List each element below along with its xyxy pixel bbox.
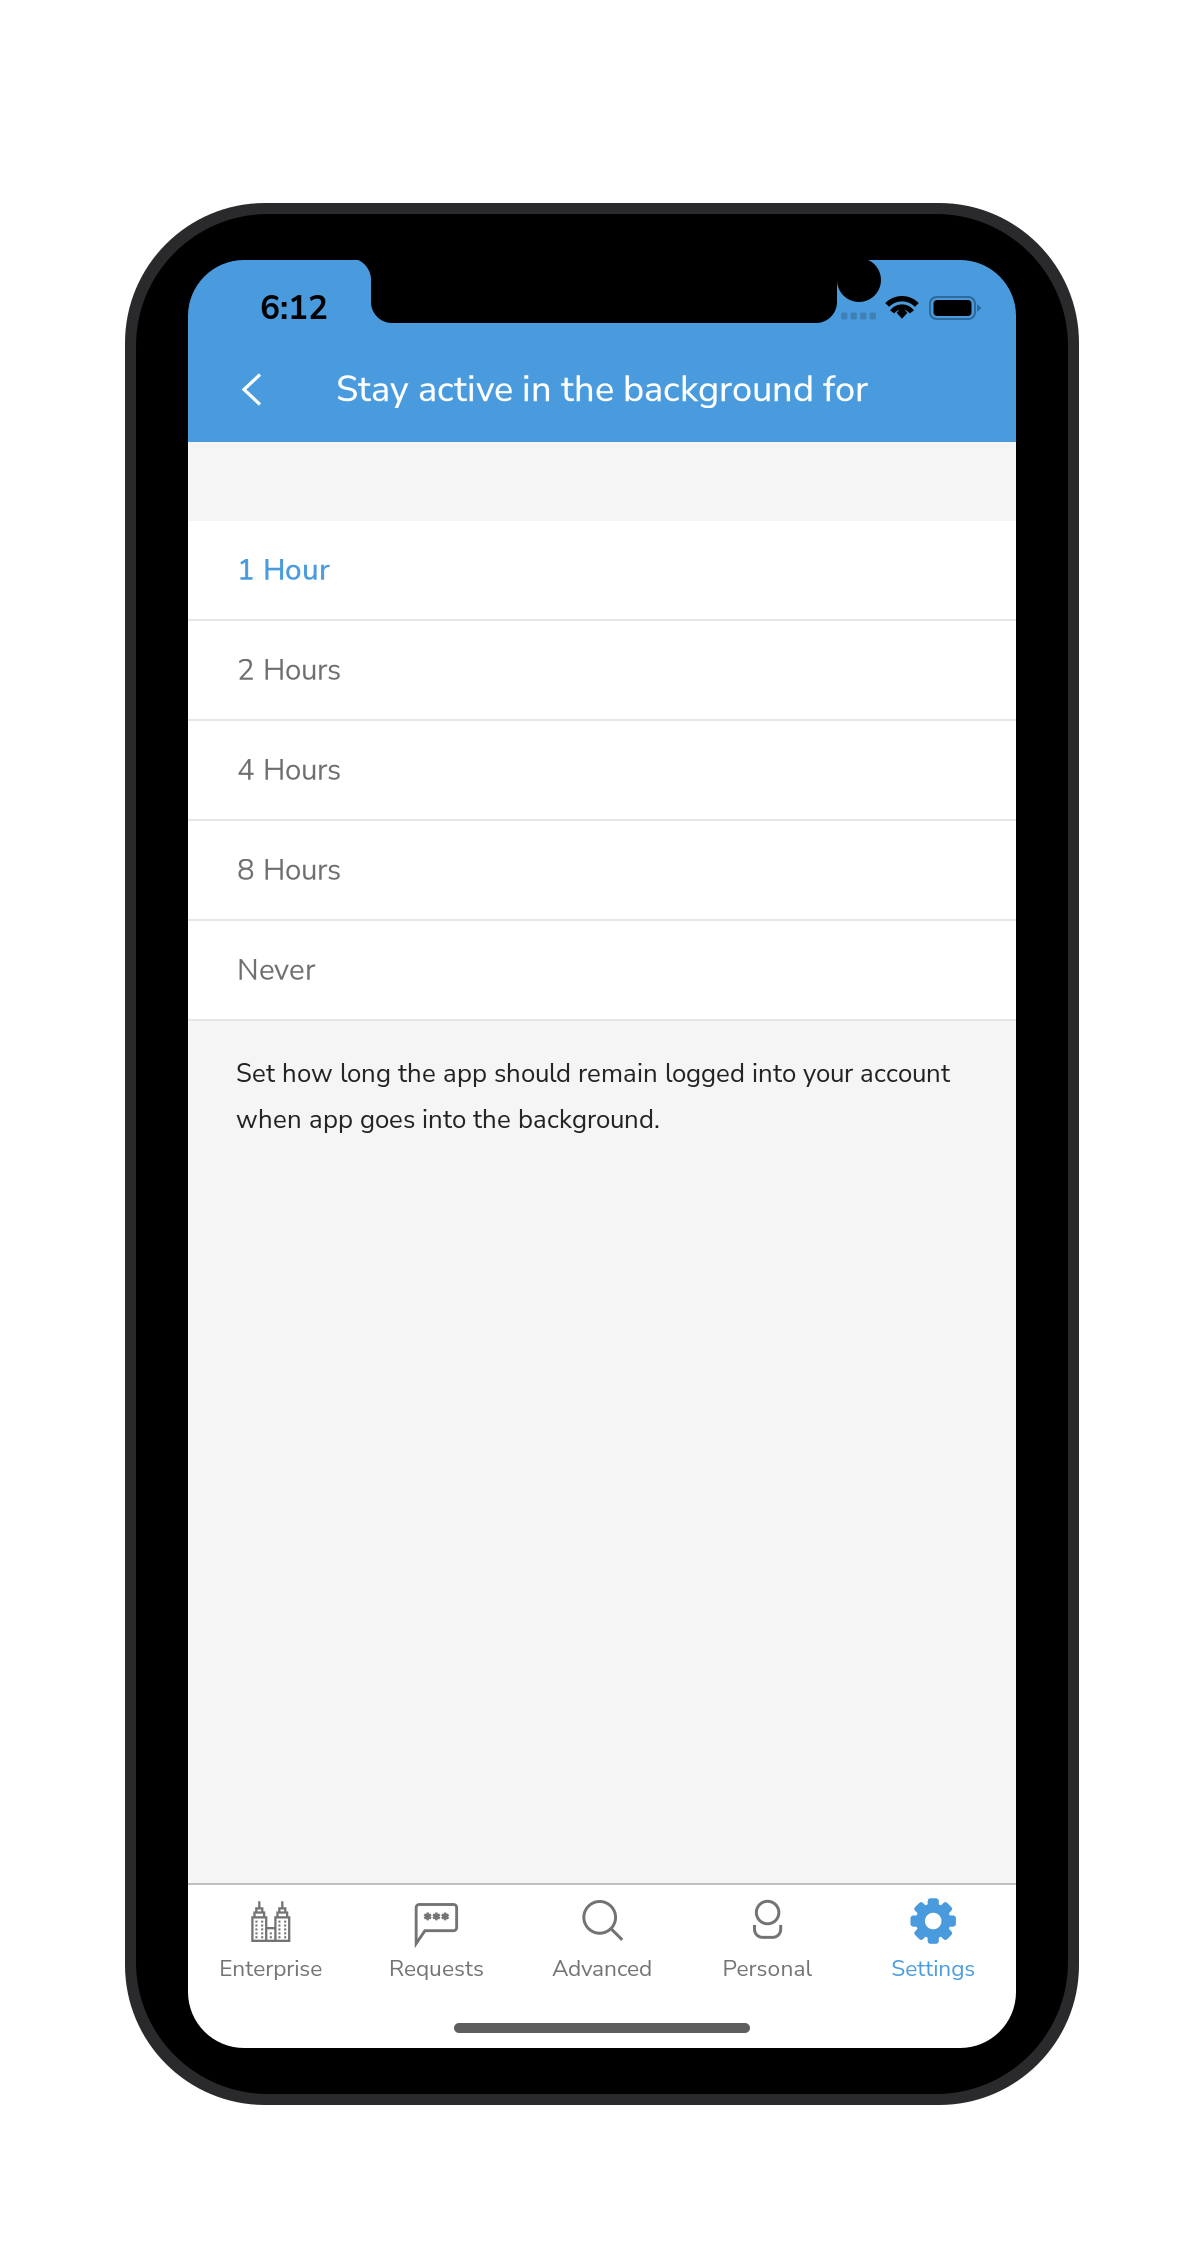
button[interactable]: 4 Hours [188,721,1016,819]
button[interactable]: 1 Hour [188,521,1016,619]
staticText: Personal [723,1953,813,1984]
button[interactable]: Requests [354,1885,519,1997]
staticText: 8 Hours [237,850,341,890]
button[interactable]: Personal [685,1885,850,1997]
staticText: Never [237,950,316,990]
button[interactable]: Advanced [519,1885,685,1997]
staticText: Settings [891,1953,975,1984]
staticText: 6:12 [260,285,328,331]
staticText: Requests [389,1953,484,1984]
button[interactable]: 8 Hours [188,821,1016,919]
staticText: 1 Hour [237,550,330,590]
button[interactable]: Settings [850,1885,1016,1997]
staticText: Set how long the app should remain logge… [236,1056,950,1137]
button[interactable]: Enterprise [188,1885,354,1997]
button[interactable]: Never [188,921,1016,1019]
staticText: Advanced [552,1953,652,1984]
staticText: Stay active in the background for [336,365,868,414]
staticText: Enterprise [219,1953,322,1984]
staticText: 4 Hours [237,750,341,790]
button[interactable]: 2 Hours [188,621,1016,719]
button[interactable]: Back [188,350,294,428]
staticText: 2 Hours [237,650,341,690]
